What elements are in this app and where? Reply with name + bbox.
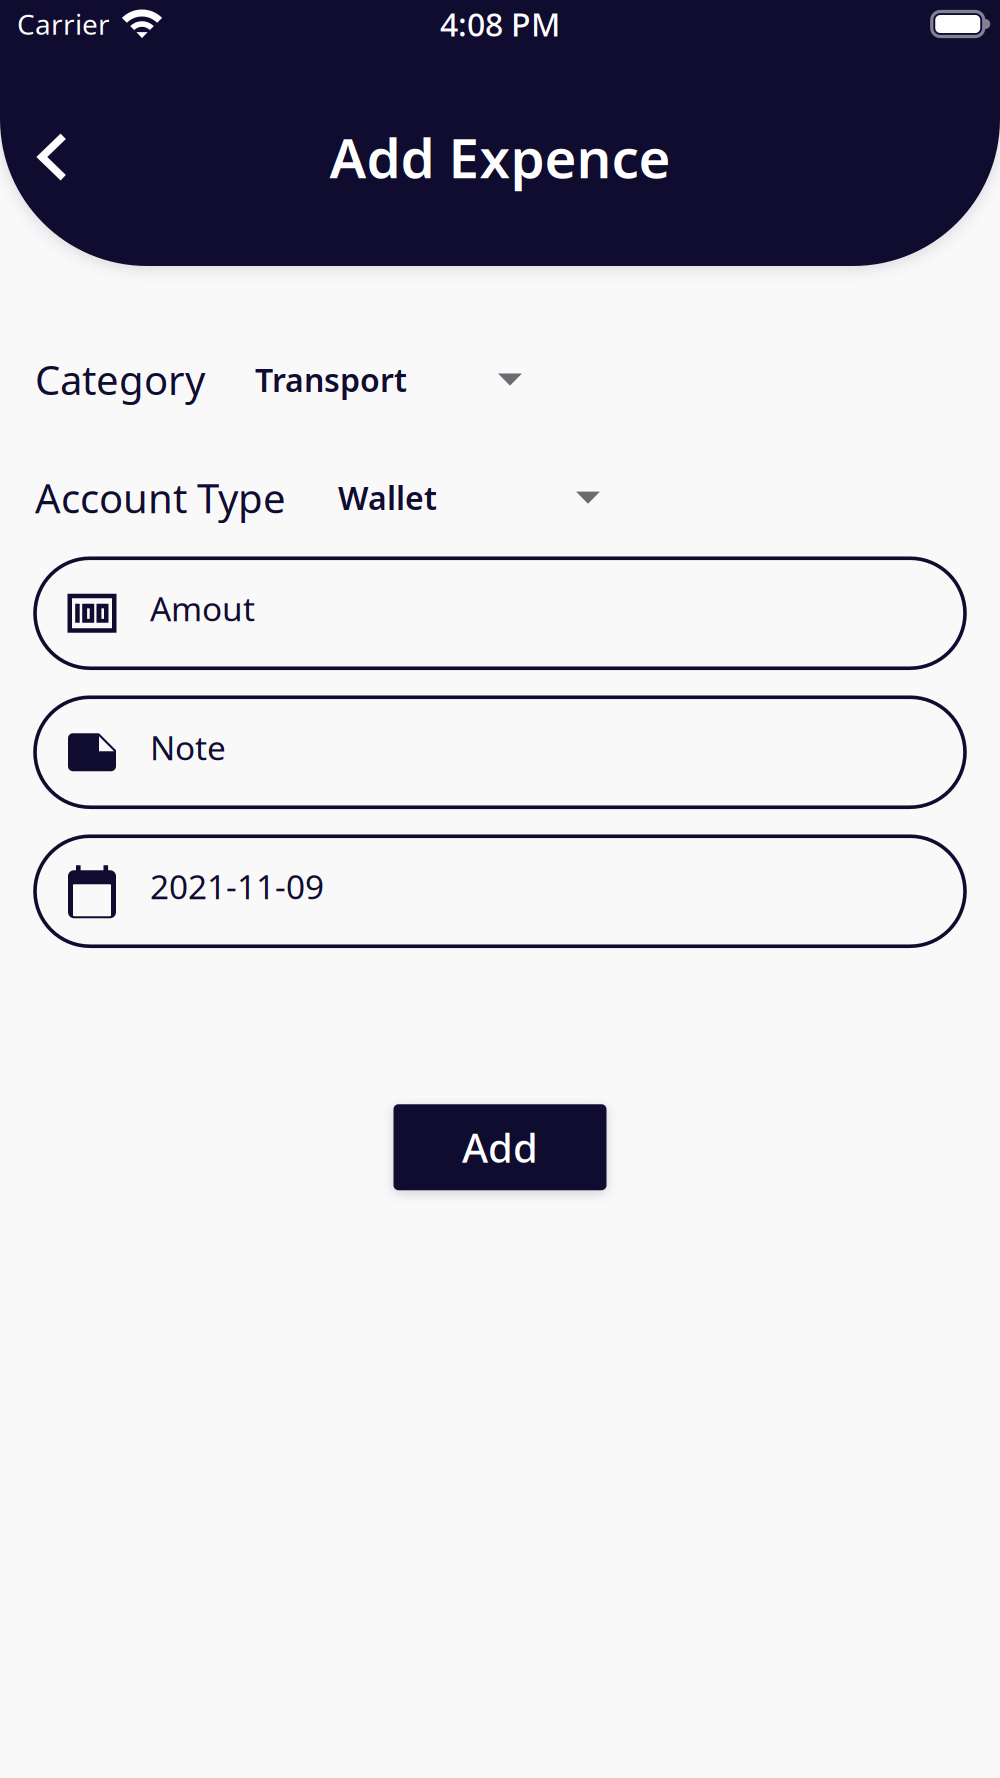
button[interactable]: Amout [35,558,965,668]
staticText: Amout [150,586,255,630]
staticText: Add Expence [329,121,670,193]
button[interactable]: Category [35,353,965,406]
staticText: Transport [255,358,407,401]
button[interactable]: Account Type [35,471,965,524]
button[interactable]: Note [35,697,965,807]
button[interactable]: 2021-11-09 [35,836,965,946]
staticText: Note [150,725,226,769]
staticText: Category [35,353,205,406]
staticText: 2021-11-09 [150,864,324,908]
staticText: Add [462,1121,538,1174]
button[interactable]: Back [16,110,89,203]
staticText: Wallet [338,476,437,519]
staticText: 4:08 PM [440,3,560,45]
staticText: Account Type [35,471,286,524]
button[interactable]: Add [393,1104,606,1190]
staticText: Carrier [17,5,110,43]
